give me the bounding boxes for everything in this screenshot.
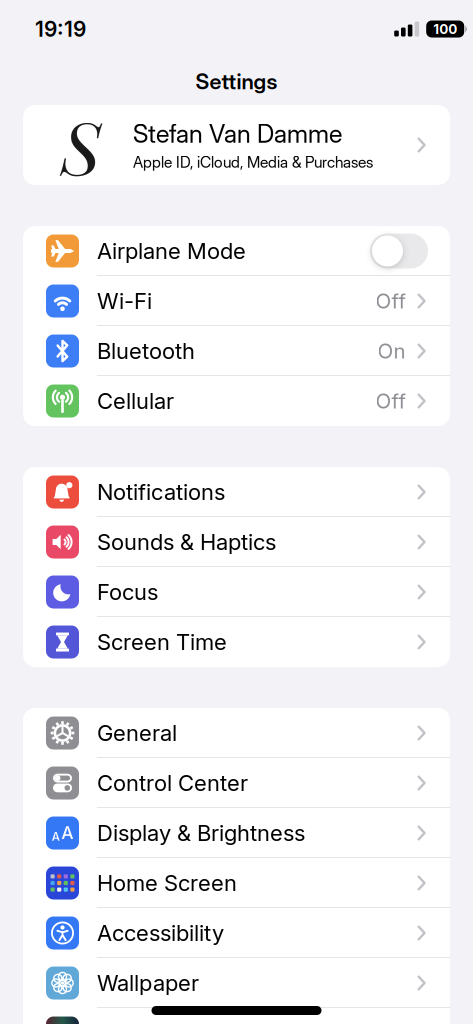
staticText: On	[377, 339, 405, 363]
staticText: Control Center	[97, 770, 248, 796]
staticText: Off	[375, 289, 405, 313]
staticText: Wi-Fi	[97, 288, 152, 314]
staticText: A	[61, 822, 73, 844]
staticText: 19:19	[35, 16, 86, 42]
staticText: Wallpaper	[97, 970, 199, 996]
staticText: Stefan Van Damme	[133, 118, 342, 149]
staticText: Focus	[97, 579, 158, 605]
staticText: Settings	[195, 68, 277, 94]
button[interactable]: Bluetooth	[23, 326, 450, 376]
button[interactable]: Siri & Search	[23, 1008, 450, 1024]
staticText: Cellular	[97, 388, 174, 414]
staticText: General	[97, 720, 177, 746]
button[interactable]: Sounds & Haptics	[23, 517, 450, 567]
staticText: Sounds & Haptics	[97, 529, 276, 555]
staticText: Home Screen	[97, 870, 237, 896]
button[interactable]: Airplane Mode	[370, 233, 450, 268]
staticText: Notifications	[97, 479, 225, 505]
button[interactable]: Screen Time	[23, 617, 450, 667]
button[interactable]: Wallpaper	[23, 958, 450, 1008]
staticText: Airplane Mode	[97, 238, 246, 264]
staticText: A	[52, 830, 60, 844]
button[interactable]: Focus	[23, 567, 450, 617]
staticText: Bluetooth	[97, 338, 195, 364]
button[interactable]: Accessibility	[23, 908, 450, 958]
staticText: 100	[433, 21, 457, 37]
button[interactable]: Notifications	[23, 467, 450, 517]
staticText: Screen Time	[97, 629, 227, 655]
button[interactable]: Home Screen	[23, 858, 450, 908]
button[interactable]: Wi-Fi	[23, 276, 450, 326]
button[interactable]: Control Center	[23, 758, 450, 808]
button[interactable]: S	[0, 105, 473, 185]
button[interactable]: A	[23, 808, 450, 858]
staticText: Accessibility	[97, 920, 224, 946]
staticText: S	[61, 97, 101, 193]
button[interactable]: Cellular	[23, 376, 450, 426]
staticText: Display & Brightness	[97, 820, 305, 846]
staticText: Apple ID, iCloud, Media & Purchases	[133, 153, 373, 171]
staticText: Off	[375, 389, 405, 413]
button[interactable]: General	[23, 708, 450, 758]
